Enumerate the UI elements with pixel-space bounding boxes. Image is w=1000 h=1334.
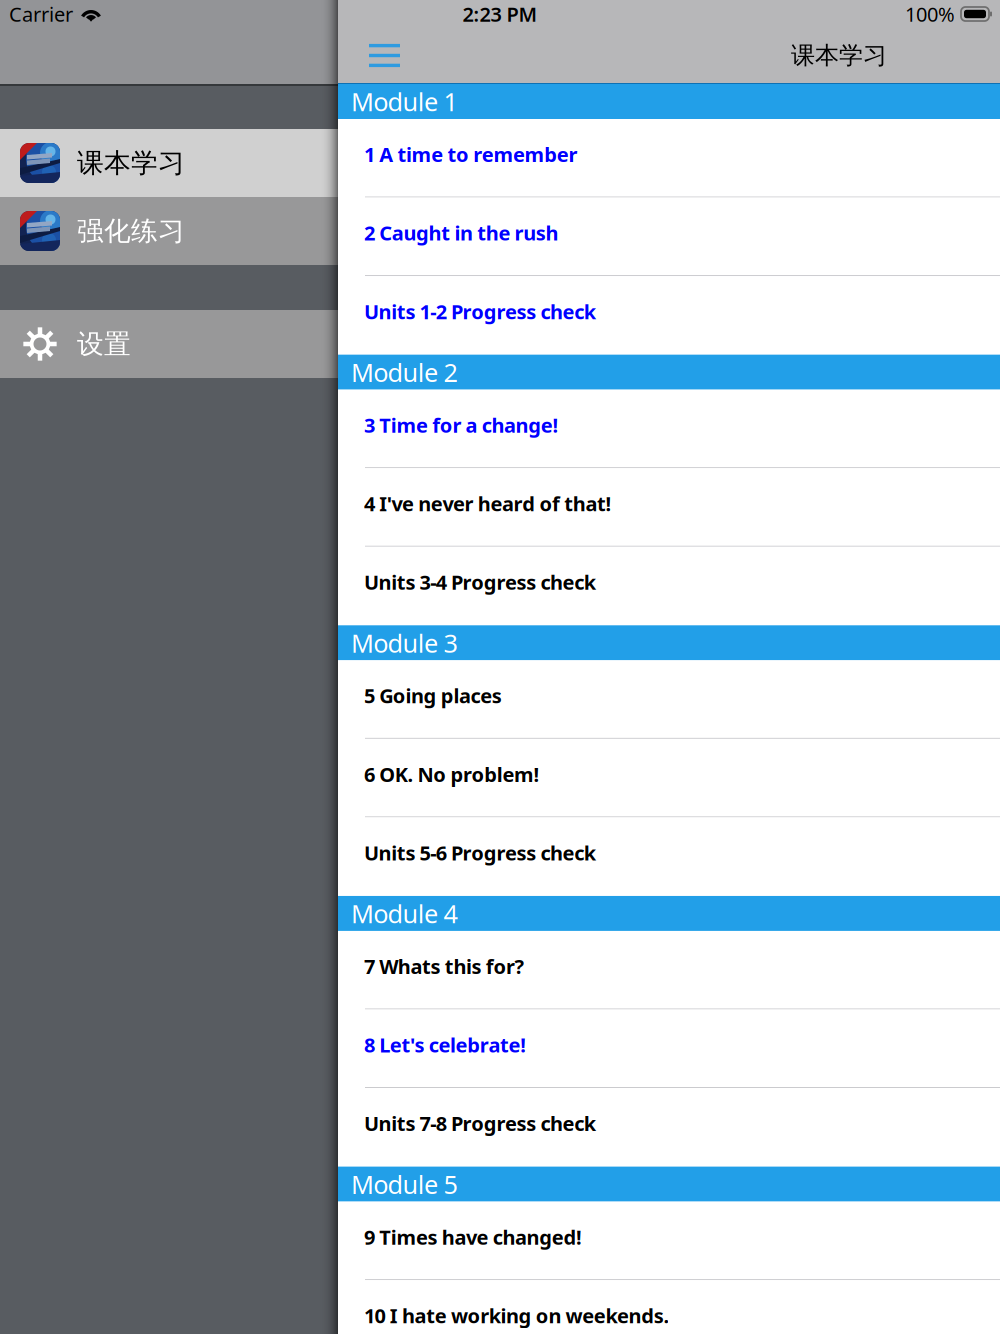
button[interactable]: Units 3-4 Progress check bbox=[338, 547, 1000, 625]
staticText: 8 Let's celebrate! bbox=[364, 1031, 526, 1058]
staticText: 10 I hate working on weekends. bbox=[364, 1302, 669, 1329]
staticText: 5 Going places bbox=[364, 682, 502, 709]
staticText: Units 1-2 Progress check bbox=[364, 298, 596, 325]
staticText: Module 4 bbox=[351, 897, 457, 930]
staticText: 1 A time to remember bbox=[364, 141, 577, 168]
staticText: 7 Whats this for? bbox=[364, 953, 525, 979]
button[interactable]: Units 5-6 Progress check bbox=[338, 817, 1000, 896]
staticText: 3 Time for a change! bbox=[364, 412, 558, 438]
staticText: 课本学习 bbox=[791, 41, 887, 70]
button[interactable]: Menu bbox=[338, 28, 400, 83]
staticText: Units 5-6 Progress check bbox=[364, 839, 596, 866]
staticText: Module 5 bbox=[351, 1167, 457, 1201]
staticText: Module 3 bbox=[351, 626, 457, 660]
button[interactable]: 课本学习 bbox=[0, 129, 338, 197]
button[interactable]: 1 A time to remember bbox=[338, 119, 1000, 197]
button[interactable]: 8 Let's celebrate! bbox=[338, 1009, 1000, 1088]
staticText: 2:23 PM bbox=[462, 1, 537, 27]
staticText: 100% bbox=[905, 1, 955, 27]
staticText: Units 7-8 Progress check bbox=[364, 1110, 596, 1137]
button[interactable]: 7 Whats this for? bbox=[338, 931, 1000, 1009]
staticText: Module 2 bbox=[351, 355, 457, 389]
staticText: Units 3-4 Progress check bbox=[364, 569, 596, 595]
staticText: 课本学习 bbox=[77, 147, 185, 179]
button[interactable]: 10 I hate working on weekends. bbox=[338, 1280, 1000, 1334]
staticText: 2 Caught in the rush bbox=[364, 219, 558, 246]
button[interactable]: Units 1-2 Progress check bbox=[338, 276, 1000, 355]
button[interactable]: 强化练习 bbox=[0, 197, 338, 265]
button[interactable]: Units 7-8 Progress check bbox=[338, 1088, 1000, 1166]
button[interactable]: 2 Caught in the rush bbox=[338, 198, 1000, 276]
staticText: Module 1 bbox=[351, 85, 457, 118]
button[interactable]: 9 Times have changed! bbox=[338, 1202, 1000, 1280]
button[interactable]: 设置 bbox=[0, 310, 338, 378]
button[interactable]: 4 I've never heard of that! bbox=[338, 468, 1000, 547]
staticText: 4 I've never heard of that! bbox=[364, 490, 612, 517]
staticText: Carrier bbox=[9, 1, 73, 27]
staticText: 设置 bbox=[77, 328, 131, 360]
button[interactable]: 3 Time for a change! bbox=[338, 390, 1000, 468]
staticText: 强化练习 bbox=[77, 215, 185, 247]
button[interactable]: 6 OK. No problem! bbox=[338, 739, 1000, 817]
button[interactable]: 5 Going places bbox=[338, 660, 1000, 739]
staticText: 9 Times have changed! bbox=[364, 1224, 582, 1250]
staticText: 6 OK. No problem! bbox=[364, 761, 540, 787]
